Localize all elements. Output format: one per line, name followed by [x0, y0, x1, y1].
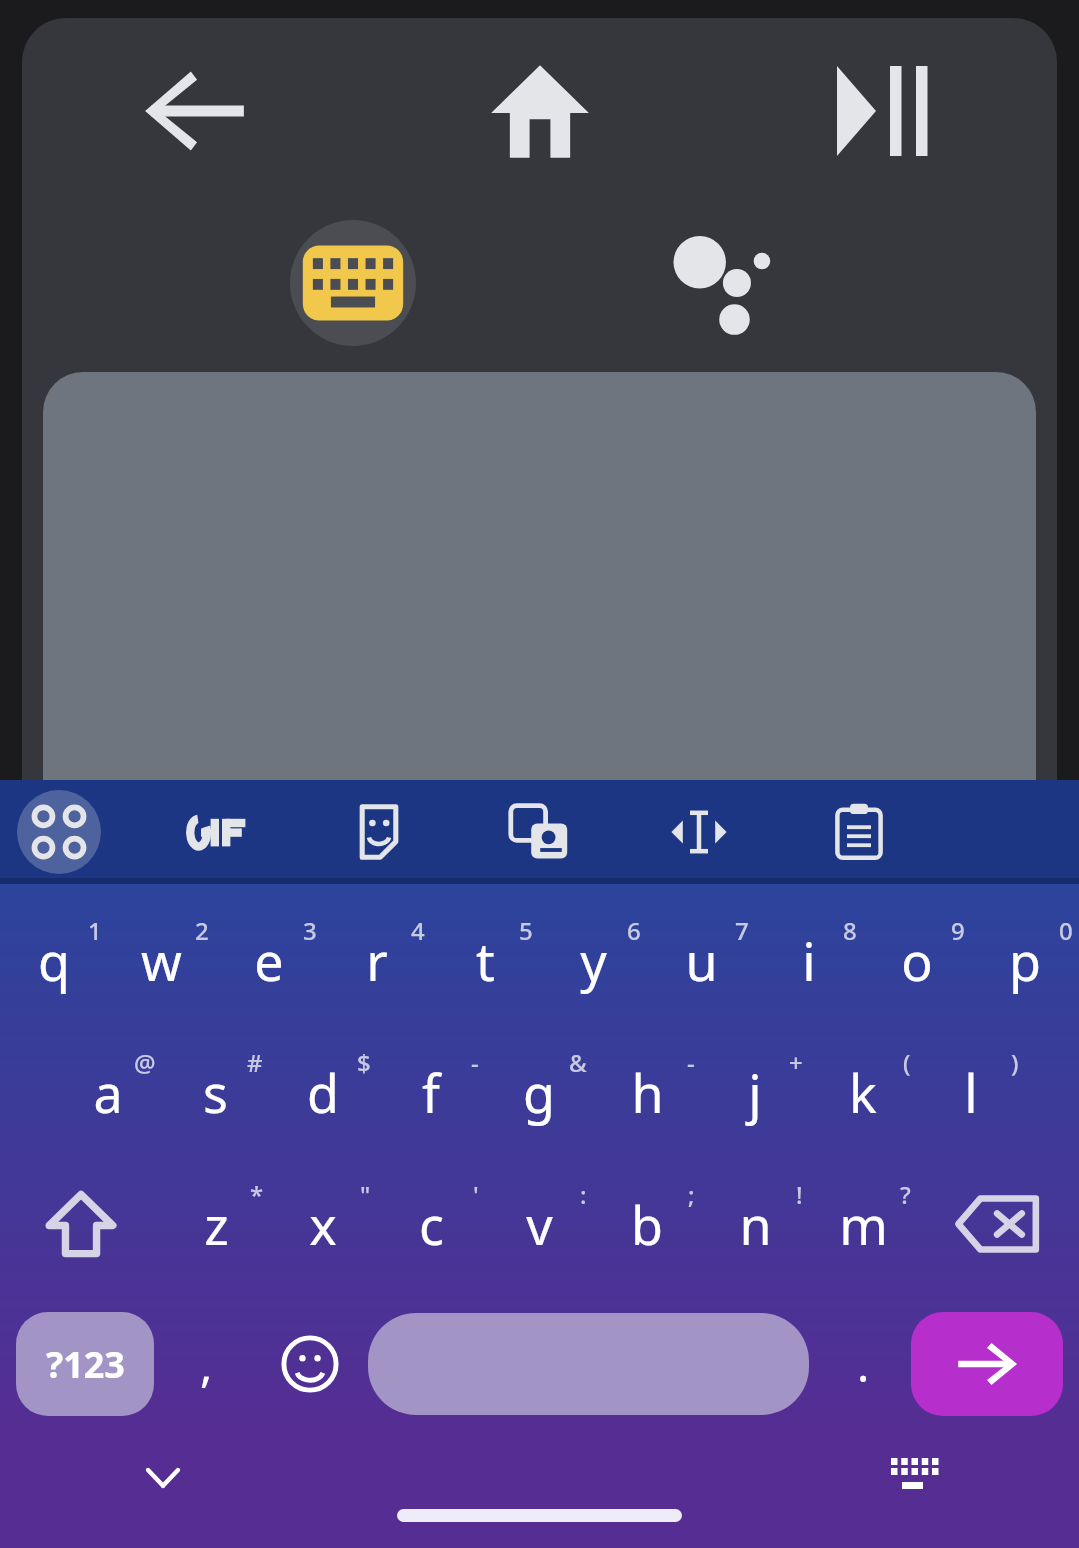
staticText: 6 — [627, 914, 641, 947]
staticText: 1 — [88, 914, 102, 947]
button[interactable]: h — [593, 1026, 701, 1158]
staticText: s — [203, 1057, 228, 1128]
staticText: m — [839, 1189, 888, 1260]
button[interactable]: Translate — [497, 790, 581, 874]
staticText: 8 — [843, 914, 857, 947]
staticText: w — [141, 925, 182, 996]
staticText: i — [802, 925, 816, 996]
button[interactable]: More tools — [17, 790, 101, 874]
staticText: h — [631, 1057, 664, 1128]
button[interactable]: Switch keyboard — [883, 1444, 949, 1510]
staticText: + — [789, 1046, 803, 1079]
button[interactable]: , — [154, 1290, 258, 1438]
staticText: ' — [473, 1178, 479, 1211]
staticText: - — [471, 1046, 479, 1079]
button[interactable]: Assistant — [666, 220, 792, 346]
button[interactable]: f — [377, 1026, 485, 1158]
staticText: 4 — [411, 914, 425, 947]
staticText: l — [964, 1057, 978, 1128]
staticText: 7 — [735, 914, 749, 947]
staticText: ?123 — [46, 1340, 125, 1389]
button[interactable]: Back — [22, 36, 367, 186]
staticText: k — [849, 1057, 877, 1128]
staticText: # — [247, 1046, 263, 1079]
staticText: d — [307, 1057, 339, 1128]
button[interactable]: k — [809, 1026, 917, 1158]
staticText: 3 — [303, 914, 317, 947]
button[interactable]: b — [593, 1158, 701, 1290]
staticText: 0 — [1059, 914, 1073, 947]
staticText: 2 — [195, 914, 209, 947]
button[interactable]: u — [647, 894, 755, 1026]
staticText: & — [569, 1046, 587, 1079]
staticText: 9 — [951, 914, 965, 947]
button[interactable]: j — [701, 1026, 809, 1158]
staticText: f — [422, 1057, 440, 1128]
button[interactable]: q — [0, 894, 107, 1026]
staticText: ( — [903, 1046, 911, 1079]
button[interactable]: s — [161, 1026, 269, 1158]
staticText: n — [739, 1189, 772, 1260]
button[interactable]: Clipboard — [817, 790, 901, 874]
staticText: x — [309, 1189, 337, 1260]
button[interactable]: GIF — [177, 790, 261, 874]
button[interactable]: Stickers — [337, 790, 421, 874]
button[interactable]: i — [755, 894, 863, 1026]
button[interactable]: ?123 — [16, 1312, 154, 1416]
button[interactable]: r — [323, 894, 431, 1026]
staticText: y — [580, 925, 607, 996]
staticText: $ — [357, 1046, 371, 1079]
staticText: * — [250, 1178, 264, 1211]
button[interactable]: Hide keyboard — [130, 1444, 196, 1510]
button[interactable]: v — [485, 1158, 593, 1290]
staticText: o — [901, 925, 933, 996]
staticText: ! — [796, 1178, 803, 1211]
button[interactable]: Emoji — [258, 1290, 362, 1438]
button[interactable]: Play or pause — [712, 36, 1057, 186]
staticText: g — [523, 1057, 555, 1128]
button[interactable]: g — [485, 1026, 593, 1158]
button[interactable]: Backspace — [917, 1158, 1079, 1290]
button[interactable]: Keyboard — [290, 220, 416, 346]
staticText: b — [631, 1189, 663, 1260]
button[interactable]: e — [215, 894, 323, 1026]
button[interactable]: l — [917, 1026, 1025, 1158]
staticText: p — [1009, 925, 1041, 996]
button[interactable]: x — [269, 1158, 377, 1290]
button[interactable]: y — [539, 894, 647, 1026]
staticText: - — [687, 1046, 695, 1079]
staticText: 5 — [519, 914, 533, 947]
button[interactable]: t — [431, 894, 539, 1026]
staticText: e — [254, 925, 284, 996]
staticText: a — [93, 1057, 123, 1128]
button[interactable]: m — [809, 1158, 917, 1290]
button[interactable]: Enter — [911, 1312, 1063, 1416]
staticText: r — [366, 925, 388, 996]
staticText: " — [360, 1178, 371, 1211]
staticText: ) — [1011, 1046, 1019, 1079]
button[interactable]: o — [863, 894, 971, 1026]
staticText: j — [748, 1057, 762, 1128]
button[interactable]: z — [162, 1158, 269, 1290]
button[interactable]: p — [971, 894, 1079, 1026]
staticText: . — [857, 1333, 870, 1396]
staticText: : — [580, 1178, 587, 1211]
button[interactable]: Text editing — [657, 790, 741, 874]
button[interactable]: Home — [367, 36, 712, 186]
button[interactable]: d — [269, 1026, 377, 1158]
staticText: q — [38, 925, 70, 996]
button[interactable]: a — [54, 1026, 161, 1158]
staticText: ? — [900, 1178, 911, 1211]
button[interactable]: . — [815, 1290, 911, 1438]
staticText: @ — [134, 1046, 156, 1079]
staticText: v — [526, 1189, 553, 1260]
staticText: c — [419, 1189, 444, 1260]
button[interactable]: Space — [368, 1313, 809, 1415]
button[interactable]: w — [107, 894, 215, 1026]
button[interactable]: n — [701, 1158, 809, 1290]
button[interactable]: c — [377, 1158, 485, 1290]
button[interactable]: Shift — [0, 1158, 162, 1290]
staticText: u — [685, 925, 718, 996]
staticText: , — [200, 1333, 213, 1396]
staticText: ; — [688, 1178, 695, 1211]
